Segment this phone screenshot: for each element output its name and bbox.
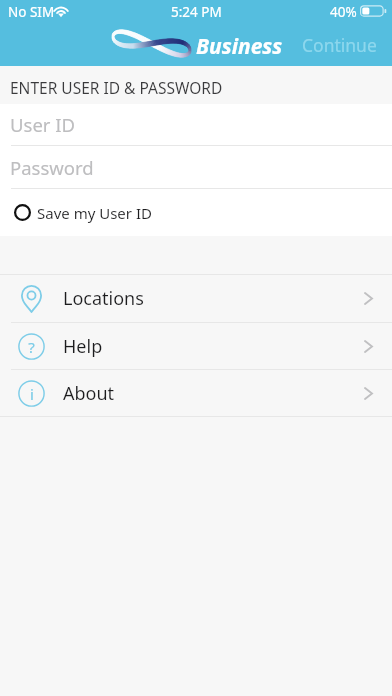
staticText: Password (10, 155, 94, 180)
staticText: 5:24 PM (171, 3, 222, 21)
staticText: ENTER USER ID & PASSWORD (10, 77, 223, 98)
staticText: Business (196, 32, 283, 61)
other: Help (18, 333, 45, 360)
button[interactable]: About (0, 370, 392, 416)
staticText: No SIM (8, 3, 55, 21)
staticText: Continue (302, 33, 377, 57)
button[interactable]: Save my User ID (0, 189, 392, 236)
button[interactable]: Continue (290, 0, 392, 65)
button[interactable]: User ID (0, 104, 392, 145)
staticText: ? (28, 337, 35, 357)
other: About (18, 380, 45, 407)
button[interactable]: Locations (0, 275, 392, 322)
staticText: User ID (10, 112, 76, 137)
staticText: Save my User ID (37, 203, 152, 223)
staticText: Help (63, 334, 103, 359)
staticText: Locations (63, 286, 144, 311)
button[interactable]: Password (0, 146, 392, 188)
staticText: i (30, 384, 34, 404)
staticText: About (63, 381, 115, 406)
staticText: 40% (330, 3, 357, 21)
other: Locations (21, 285, 42, 313)
button[interactable]: Help (0, 323, 392, 369)
